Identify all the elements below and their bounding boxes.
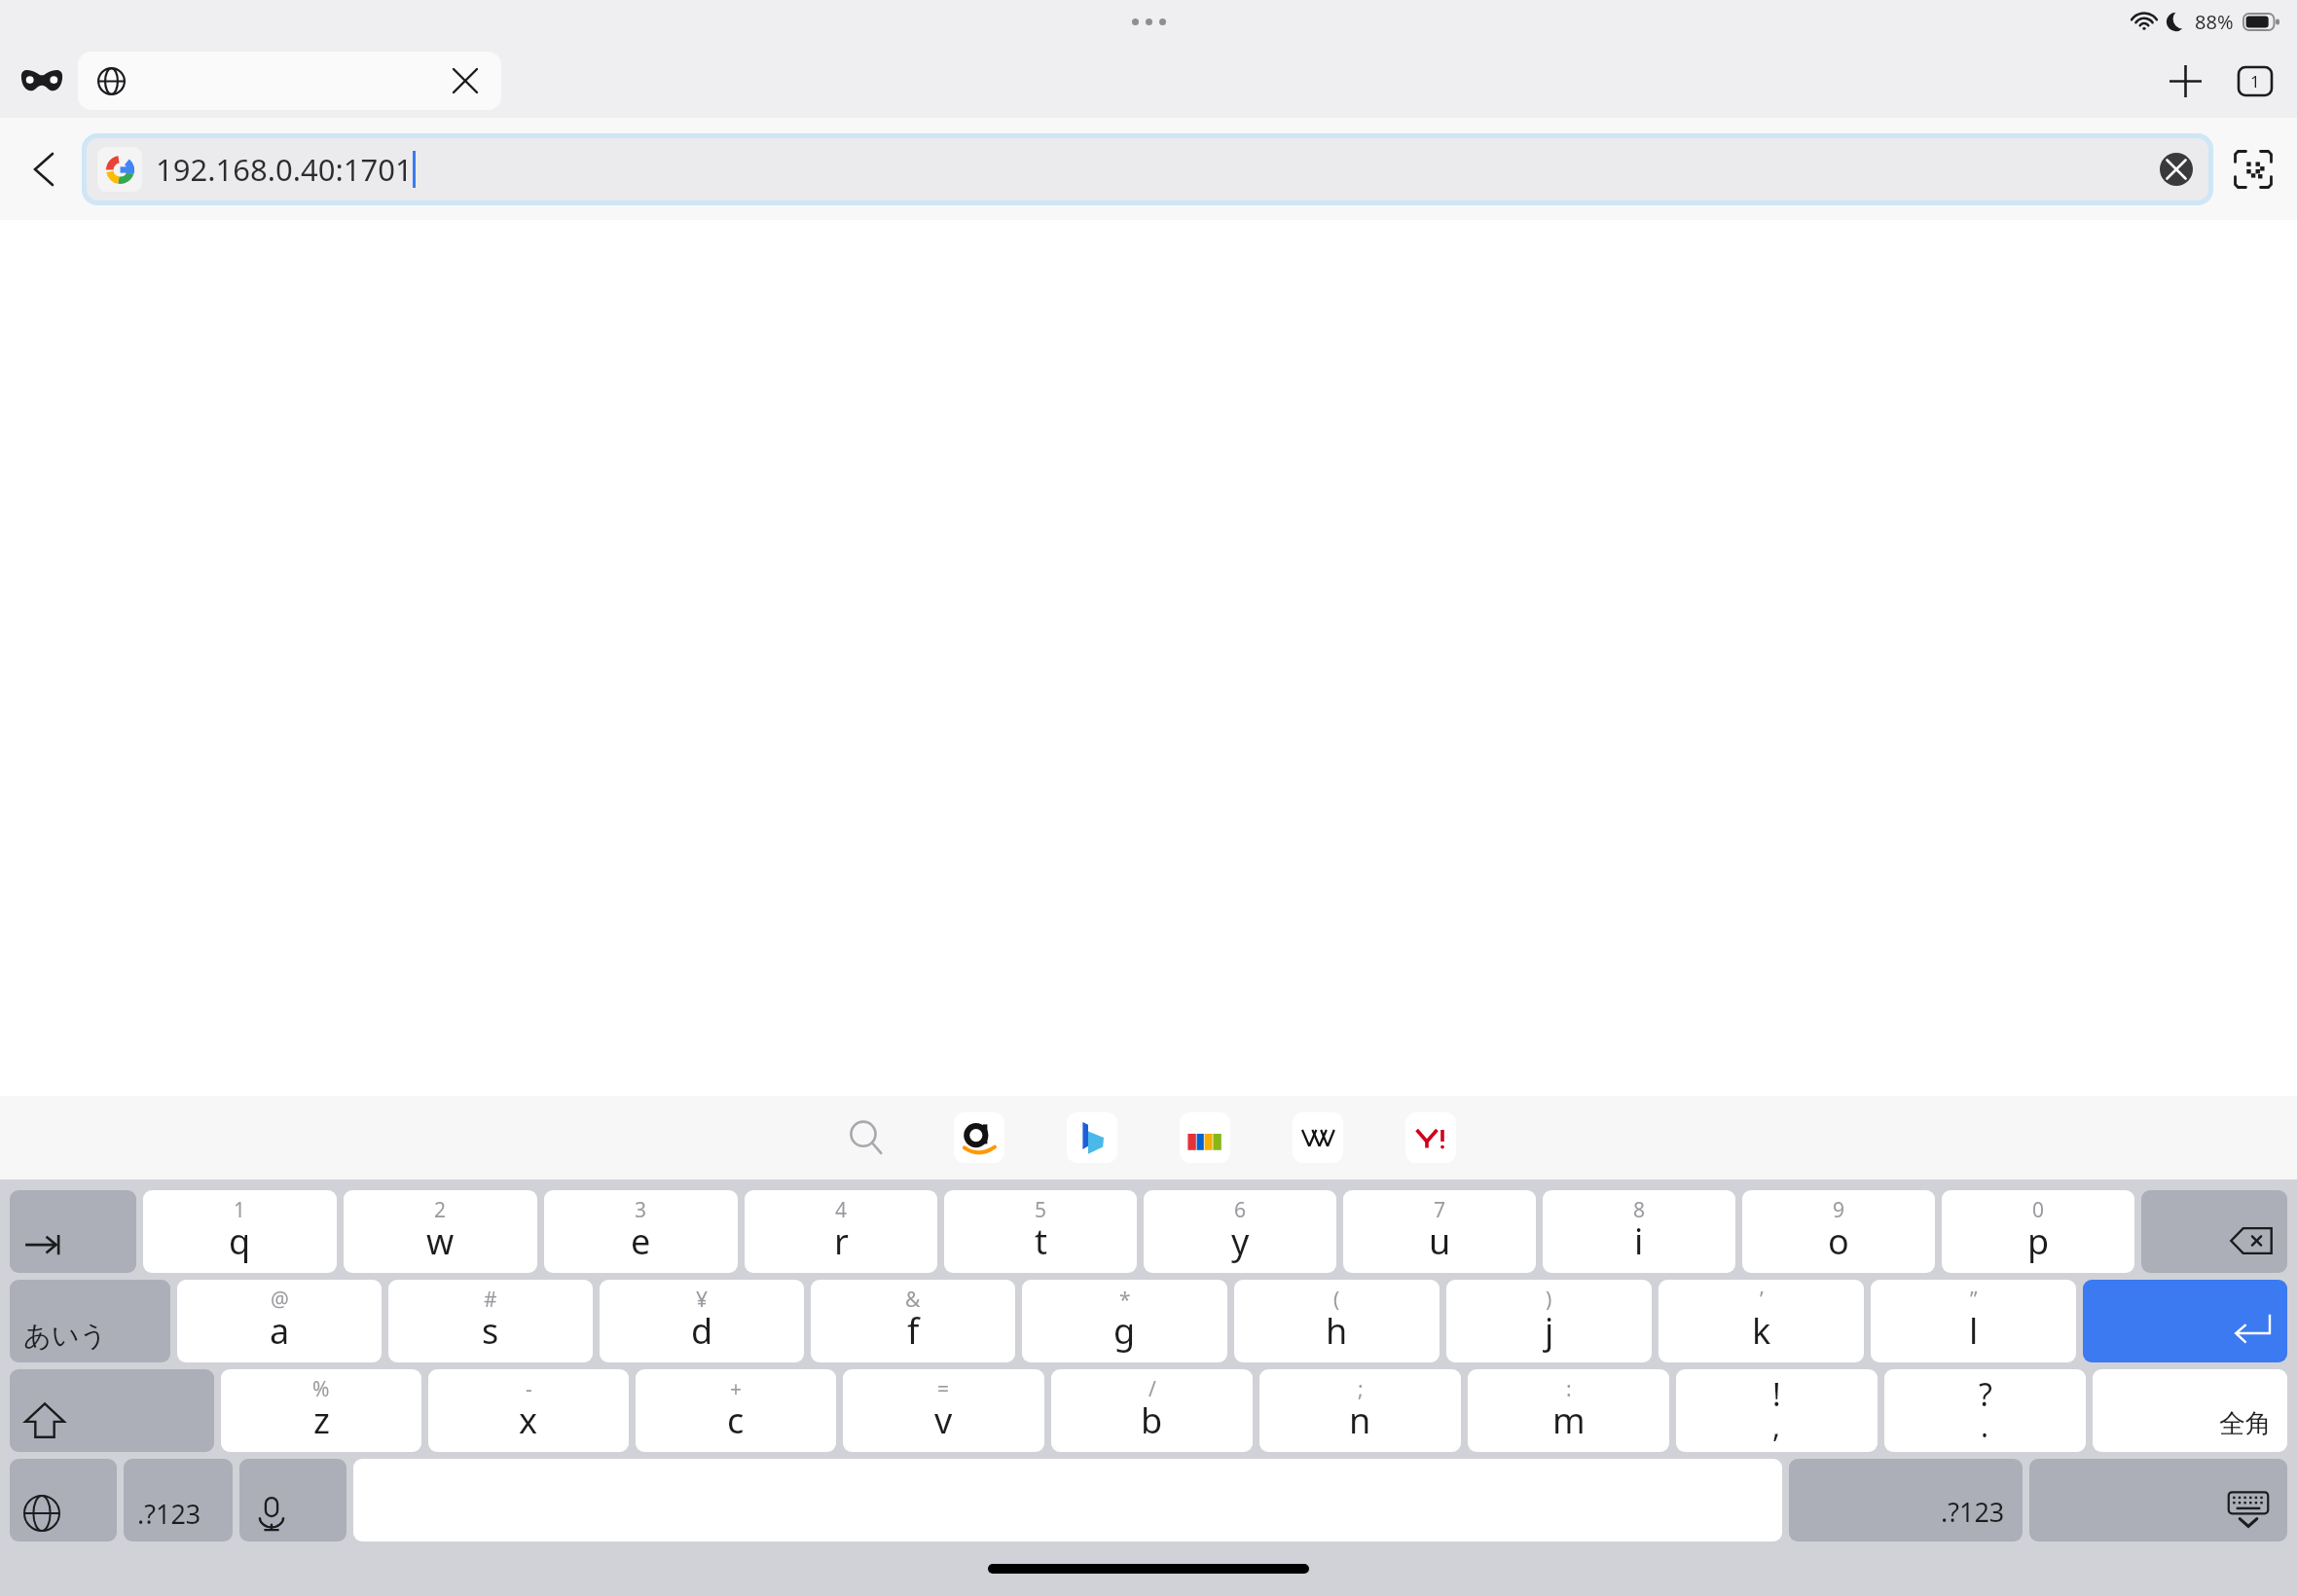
staticText: c (727, 1396, 745, 1444)
button[interactable]: 192.168.0.40:1701 (87, 138, 2208, 200)
button[interactable]: 3 (544, 1190, 738, 1273)
button[interactable]: Japanese input (10, 1280, 170, 1362)
staticText: p (2027, 1217, 2050, 1265)
staticText: # (484, 1286, 497, 1314)
staticText: e (631, 1217, 651, 1265)
staticText: 9 (1833, 1196, 1845, 1224)
button[interactable]: .?123 (1789, 1459, 2023, 1542)
staticText: y (1231, 1217, 1250, 1265)
staticText: : (1566, 1375, 1572, 1403)
button[interactable]: Close tab (78, 52, 501, 110)
button[interactable]: Search (838, 1109, 894, 1166)
staticText: h (1326, 1307, 1348, 1355)
button[interactable]: Back (14, 139, 74, 199)
staticText: u (1429, 1217, 1451, 1265)
staticText: r (834, 1217, 849, 1265)
staticText: j (1545, 1307, 1554, 1355)
staticText: n (1349, 1396, 1371, 1444)
button[interactable]: Scan QR code (2223, 139, 2283, 199)
staticText: = (937, 1375, 950, 1403)
button[interactable]: ” (1871, 1280, 2076, 1362)
button[interactable]: 7 (1343, 1190, 1536, 1273)
button[interactable]: 5 (944, 1190, 1137, 1273)
staticText: 4 (835, 1196, 848, 1224)
staticText: 6 (1234, 1196, 1247, 1224)
staticText: ? (1979, 1373, 1992, 1416)
button[interactable]: Wikipedia (1290, 1109, 1346, 1166)
button[interactable]: 1 (143, 1190, 337, 1273)
staticText: 192.168.0.40:1701 (156, 149, 413, 190)
staticText: 2 (434, 1196, 447, 1224)
staticText: あいう (23, 1319, 107, 1353)
staticText: + (730, 1375, 743, 1403)
button[interactable]: # (388, 1280, 593, 1362)
staticText: t (1035, 1217, 1047, 1265)
button[interactable]: - (428, 1369, 629, 1452)
button[interactable]: 全角 (2093, 1369, 2287, 1452)
staticText: ) (1546, 1286, 1552, 1314)
button[interactable]: : (1468, 1369, 1669, 1452)
button[interactable]: * (1022, 1280, 1227, 1362)
button[interactable]: ¥ (600, 1280, 804, 1362)
button[interactable]: Close tab (449, 64, 482, 97)
staticText: 1 (234, 1196, 246, 1224)
button[interactable]: 2 (344, 1190, 537, 1273)
button[interactable]: ’ (1659, 1280, 1864, 1362)
button[interactable]: / (1051, 1369, 1253, 1452)
staticText: .?123 (1941, 1494, 2005, 1530)
button[interactable]: Bing (1064, 1109, 1120, 1166)
button[interactable]: Show tabs (2225, 51, 2285, 111)
button[interactable]: 9 (1742, 1190, 1935, 1273)
staticText: - (526, 1375, 532, 1403)
button[interactable]: Numbers (124, 1459, 233, 1542)
staticText: 全角 (2219, 1407, 2272, 1440)
button[interactable]: Tab (10, 1190, 136, 1273)
staticText: ¥ (696, 1286, 709, 1314)
staticText: a (270, 1307, 290, 1355)
staticText: 88% (2195, 9, 2234, 35)
staticText: b (1141, 1396, 1163, 1444)
staticText: q (229, 1217, 251, 1265)
button[interactable]: % (221, 1369, 421, 1452)
button[interactable]: ? (1884, 1369, 2086, 1452)
button[interactable]: 6 (1144, 1190, 1336, 1273)
button[interactable]: 8 (1543, 1190, 1735, 1273)
staticText: f (907, 1307, 920, 1355)
staticText: @ (271, 1286, 289, 1314)
button[interactable]: 4 (745, 1190, 937, 1273)
button[interactable]: Dictation (239, 1459, 346, 1542)
button[interactable]: + (636, 1369, 836, 1452)
button[interactable]: @ (177, 1280, 382, 1362)
button[interactable]: ! (1676, 1369, 1878, 1452)
button[interactable]: 0 (1942, 1190, 2134, 1273)
button[interactable]: Private browsing (12, 51, 72, 111)
button[interactable]: Return (2083, 1280, 2287, 1362)
button[interactable]: Amazon (951, 1109, 1007, 1166)
button[interactable]: ) (1446, 1280, 1652, 1362)
staticText: z (313, 1396, 330, 1444)
button[interactable]: ( (1234, 1280, 1440, 1362)
button[interactable]: Backspace (2141, 1190, 2287, 1273)
staticText: g (1113, 1307, 1136, 1355)
button[interactable]: ; (1259, 1369, 1461, 1452)
button[interactable]: New tab (2155, 51, 2215, 111)
staticText: d (691, 1307, 713, 1355)
staticText: 8 (1633, 1196, 1646, 1224)
staticText: i (1634, 1217, 1644, 1265)
staticText: & (905, 1286, 921, 1314)
button[interactable]: & (811, 1280, 1015, 1362)
button[interactable]: Change keyboard (10, 1459, 117, 1542)
button[interactable]: Clear text (2155, 148, 2198, 191)
button[interactable]: Yahoo (1403, 1109, 1459, 1166)
staticText: 5 (1035, 1196, 1047, 1224)
button[interactable]: Hide keyboard (2029, 1459, 2287, 1542)
staticText: ’ (1760, 1286, 1764, 1314)
staticText: * (1119, 1286, 1131, 1314)
staticText: v (934, 1396, 953, 1444)
staticText: ( (1333, 1286, 1340, 1314)
staticText: 0 (2032, 1196, 2045, 1224)
button[interactable]: eBay (1177, 1109, 1233, 1166)
button[interactable]: = (843, 1369, 1044, 1452)
button[interactable]: Shift (10, 1369, 214, 1452)
